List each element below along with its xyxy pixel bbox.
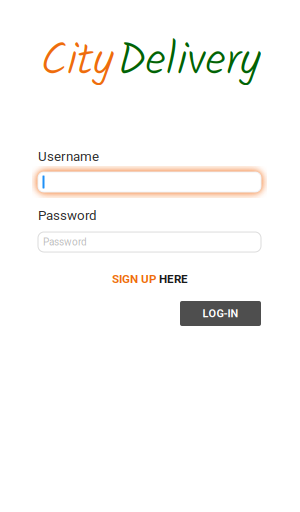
staticText: City bbox=[40, 26, 113, 98]
button[interactable]: SIGN UP bbox=[0, 270, 300, 288]
staticText: Username bbox=[38, 149, 99, 164]
staticText: HERE bbox=[159, 272, 188, 286]
button[interactable]: LOG-IN bbox=[180, 301, 261, 326]
staticText: Password bbox=[38, 208, 97, 223]
staticText: Password bbox=[43, 236, 87, 248]
staticText: SIGN UP bbox=[112, 272, 159, 286]
staticText: Delivery bbox=[117, 26, 260, 98]
staticText: LOG-IN bbox=[202, 307, 238, 320]
